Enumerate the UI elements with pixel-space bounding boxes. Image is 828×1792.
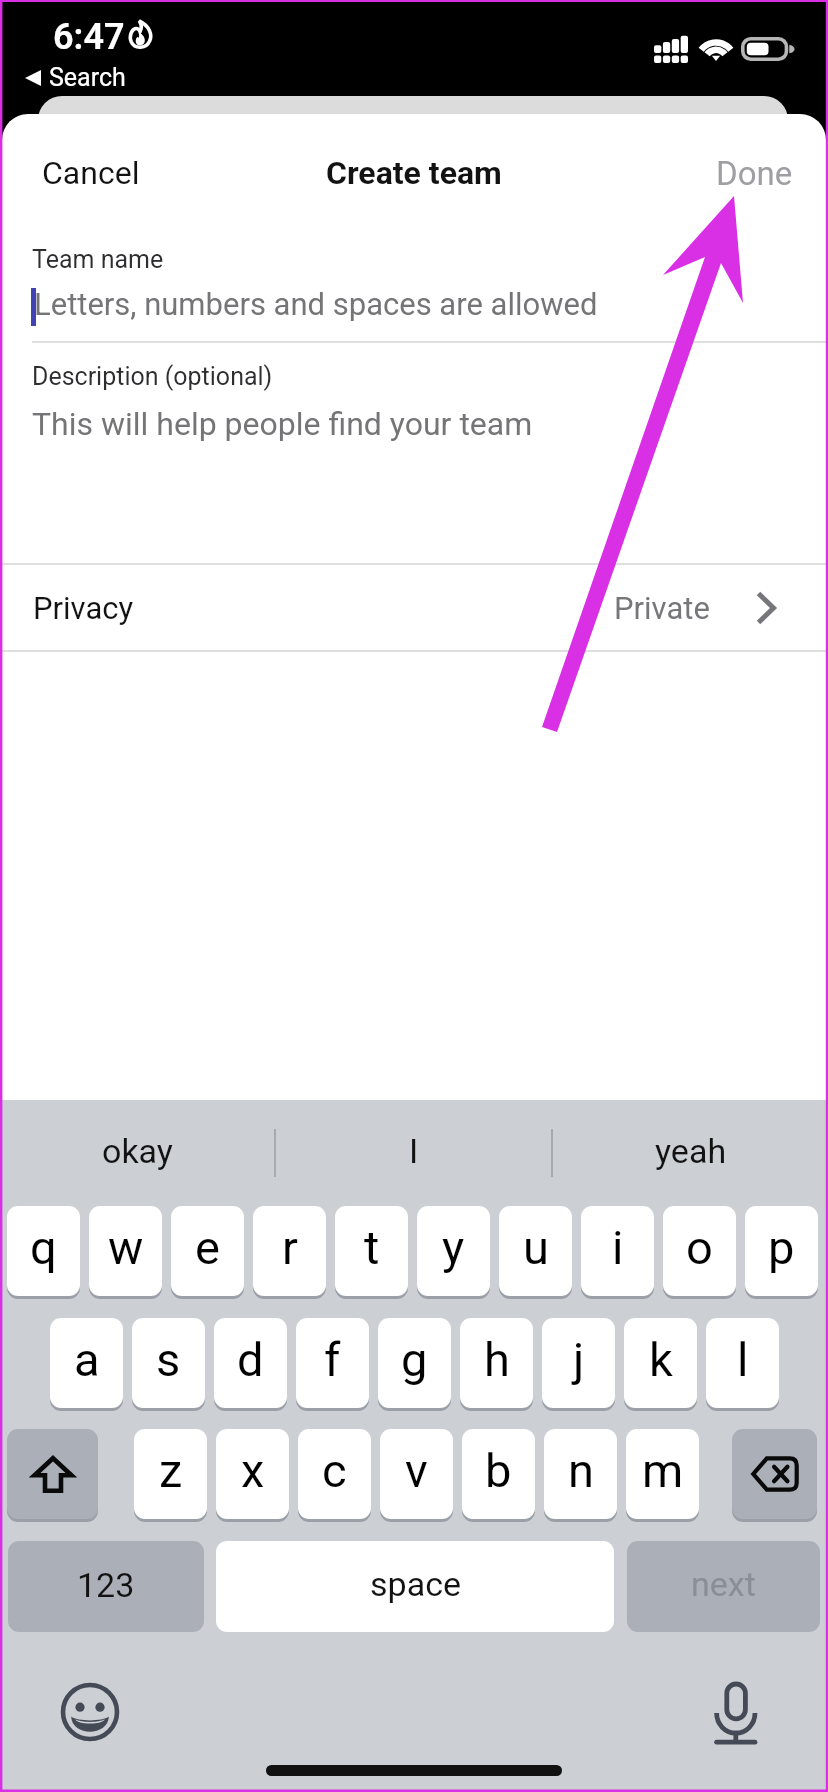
button[interactable]: Cancel xyxy=(42,141,140,205)
button[interactable]: a xyxy=(50,1318,123,1408)
button[interactable]: z xyxy=(134,1429,207,1519)
button[interactable]: e xyxy=(171,1206,244,1296)
staticText: I xyxy=(409,1131,419,1171)
staticText: j xyxy=(573,1332,585,1387)
button[interactable]: Shift xyxy=(7,1429,98,1519)
button[interactable]: w xyxy=(89,1206,162,1296)
button[interactable]: Team name xyxy=(0,214,828,341)
button[interactable]: p xyxy=(745,1206,818,1296)
staticText: h xyxy=(484,1332,510,1387)
staticText: q xyxy=(30,1220,57,1275)
staticText: Letters, numbers and spaces are allowed xyxy=(34,286,598,322)
button[interactable]: b xyxy=(462,1429,535,1519)
staticText: Done xyxy=(716,154,793,193)
button[interactable]: Description (optional) xyxy=(0,343,828,563)
staticText: o xyxy=(686,1220,713,1275)
staticText: r xyxy=(282,1220,298,1275)
staticText: space xyxy=(370,1564,461,1604)
button[interactable]: Create team xyxy=(326,154,502,192)
button[interactable]: v xyxy=(380,1429,453,1519)
button[interactable]: t xyxy=(335,1206,408,1296)
staticText: Private xyxy=(614,590,710,626)
button[interactable]: g xyxy=(378,1318,451,1408)
button[interactable]: space xyxy=(216,1541,614,1632)
staticText: This will help people find your team xyxy=(32,405,533,443)
staticText: g xyxy=(401,1332,428,1387)
button[interactable]: k xyxy=(624,1318,697,1408)
staticText: Search xyxy=(49,63,126,92)
staticText: v xyxy=(405,1443,428,1498)
staticText: s xyxy=(156,1332,181,1387)
button[interactable]: okay xyxy=(0,1100,274,1206)
staticText: yeah xyxy=(655,1131,727,1171)
staticText: Privacy xyxy=(33,590,134,626)
staticText: p xyxy=(768,1220,795,1275)
button[interactable]: u xyxy=(499,1206,572,1296)
staticText: u xyxy=(523,1220,549,1275)
button[interactable]: l xyxy=(706,1318,779,1408)
button[interactable]: Emoji keyboard xyxy=(60,1682,120,1742)
staticText: k xyxy=(649,1332,673,1387)
staticText: y xyxy=(442,1220,465,1275)
staticText: w xyxy=(108,1220,144,1275)
staticText: a xyxy=(74,1332,100,1387)
button[interactable]: Done xyxy=(716,141,793,205)
button[interactable]: Search xyxy=(25,63,126,92)
button[interactable]: h xyxy=(460,1318,533,1408)
button[interactable]: r xyxy=(253,1206,326,1296)
staticText: t xyxy=(364,1220,380,1275)
button[interactable]: 123 xyxy=(8,1541,204,1632)
button[interactable]: s xyxy=(132,1318,205,1408)
button[interactable]: i xyxy=(581,1206,654,1296)
button[interactable]: d xyxy=(214,1318,287,1408)
button[interactable]: m xyxy=(626,1429,699,1519)
staticText: n xyxy=(568,1443,594,1498)
staticText: e xyxy=(195,1220,220,1275)
button[interactable]: Privacy xyxy=(0,565,828,650)
staticText: next xyxy=(691,1564,756,1604)
staticText: Team name xyxy=(32,245,164,274)
button[interactable]: f xyxy=(296,1318,369,1408)
staticText: f xyxy=(324,1332,341,1387)
button[interactable]: n xyxy=(544,1429,617,1519)
button[interactable]: y xyxy=(417,1206,490,1296)
button[interactable]: x xyxy=(216,1429,289,1519)
button[interactable]: yeah xyxy=(553,1100,828,1206)
button[interactable]: next xyxy=(627,1541,820,1632)
staticText: c xyxy=(322,1443,347,1498)
button[interactable]: c xyxy=(298,1429,371,1519)
button[interactable]: o xyxy=(663,1206,736,1296)
staticText: l xyxy=(737,1332,749,1387)
staticText: x xyxy=(241,1443,265,1498)
staticText: z xyxy=(159,1443,183,1498)
button[interactable]: I xyxy=(276,1100,551,1206)
staticText: Description (optional) xyxy=(32,362,273,391)
button[interactable]: Dictation xyxy=(707,1678,767,1738)
staticText: m xyxy=(642,1443,684,1498)
button[interactable]: q xyxy=(7,1206,80,1296)
button[interactable]: Backspace xyxy=(732,1429,817,1519)
staticText: 123 xyxy=(77,1565,135,1605)
button[interactable]: j xyxy=(542,1318,615,1408)
staticText: d xyxy=(237,1332,264,1387)
staticText: b xyxy=(485,1443,512,1498)
staticText: 6:47 xyxy=(53,16,125,58)
staticText: Cancel xyxy=(42,154,140,192)
staticText: okay xyxy=(102,1131,173,1171)
staticText: i xyxy=(612,1220,624,1275)
staticText: Create team xyxy=(326,154,502,192)
